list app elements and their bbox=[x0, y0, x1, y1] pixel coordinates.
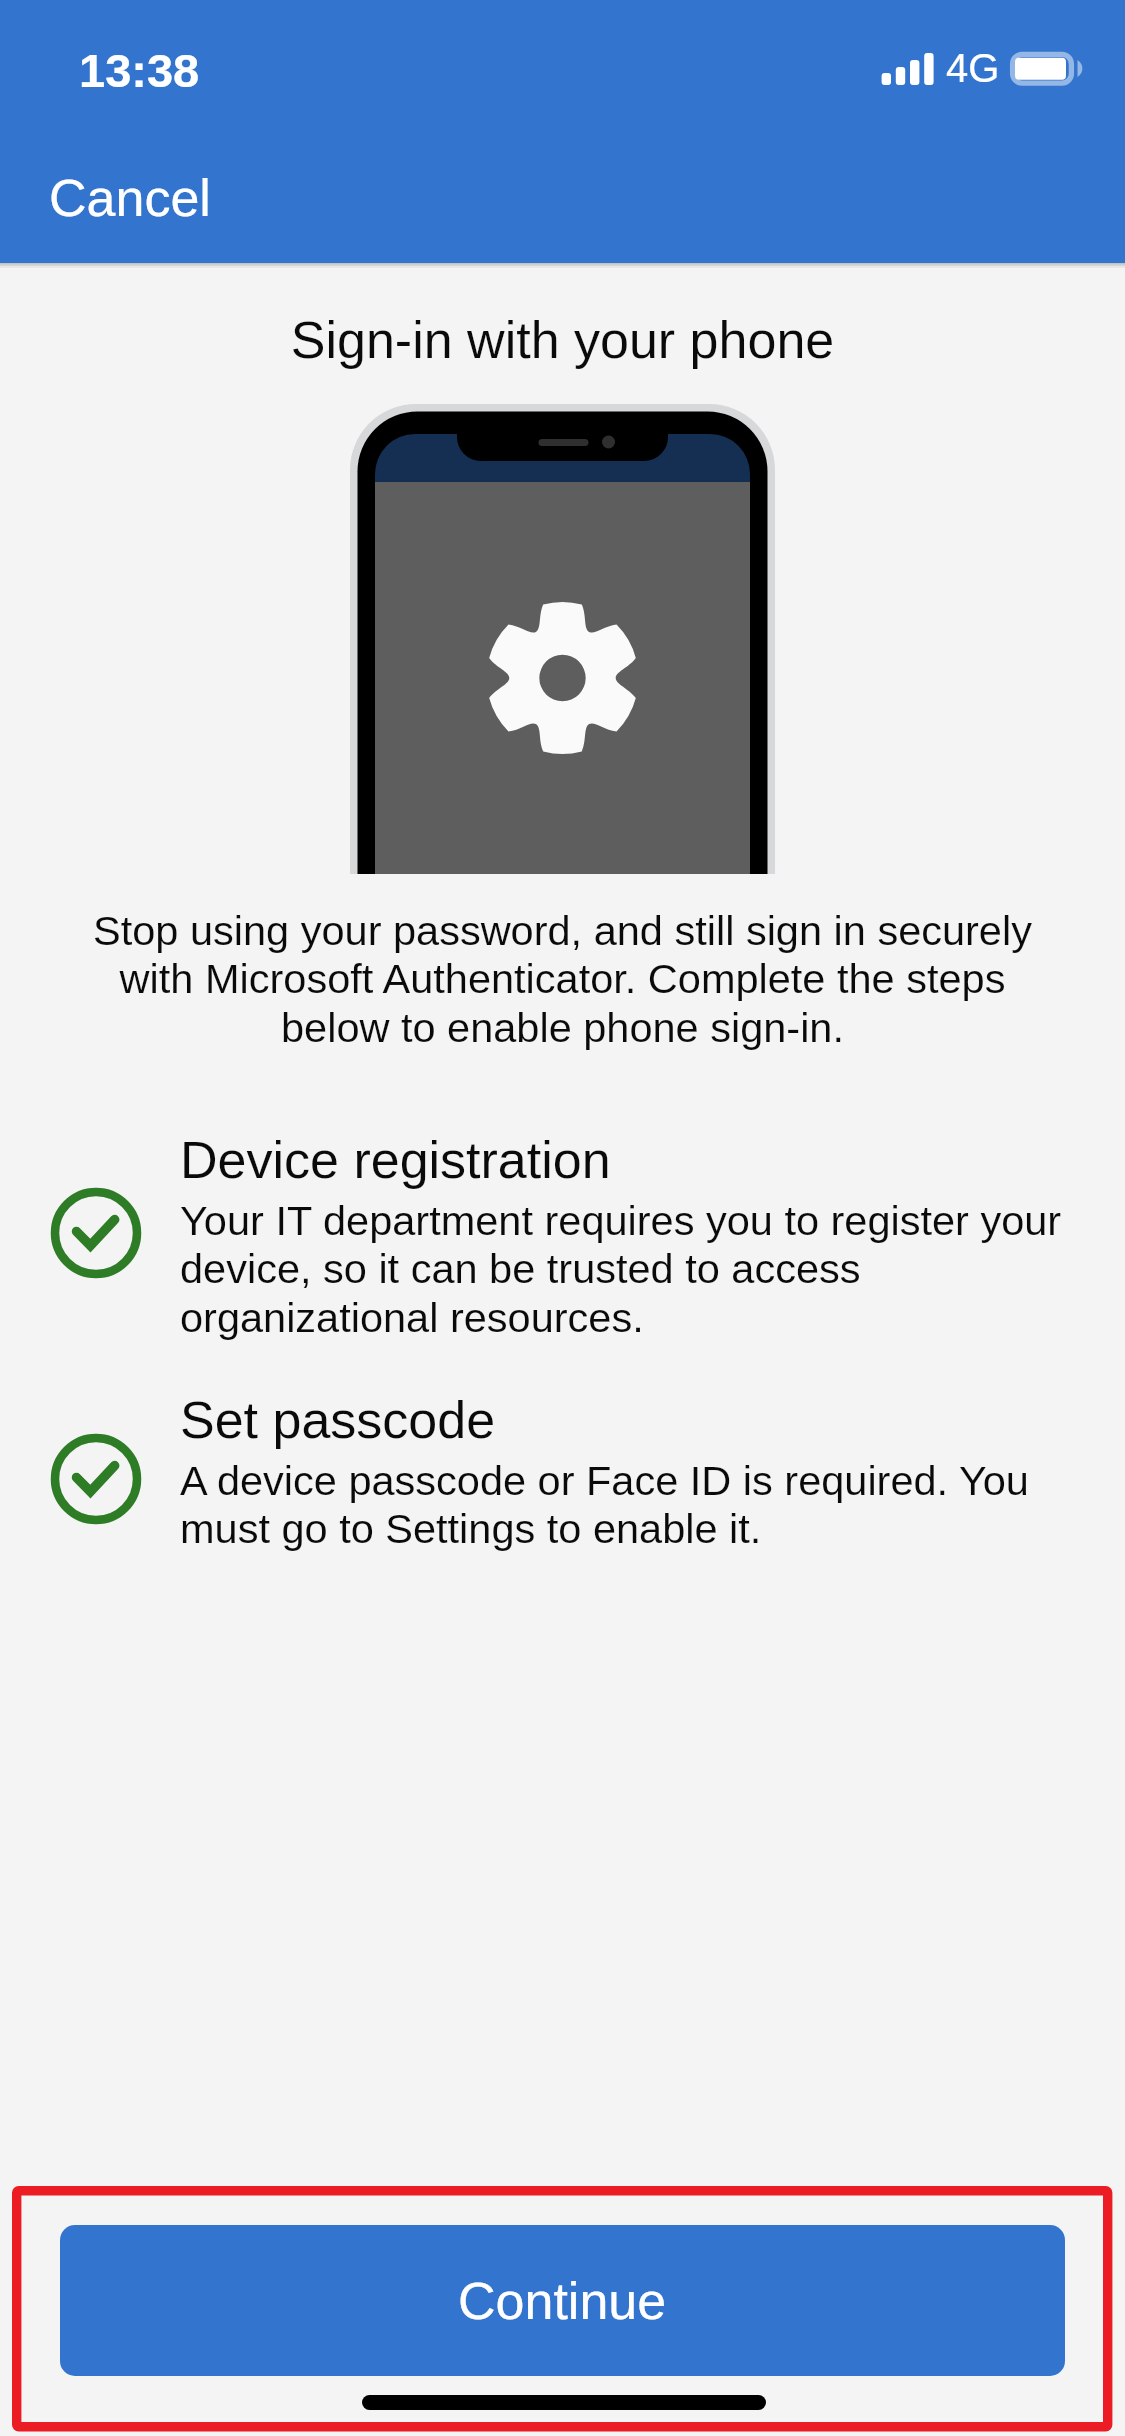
staticText: 13:38 bbox=[79, 44, 200, 97]
button[interactable]: Cancel bbox=[23, 145, 237, 251]
other: Completed bbox=[47, 1184, 145, 1282]
staticText: Cancel bbox=[49, 169, 211, 227]
other: Signal 4G, battery full bbox=[876, 41, 1091, 97]
staticText: 4G bbox=[946, 46, 1000, 91]
staticText: A device passcode or Face ID is required… bbox=[180, 1457, 1062, 1552]
staticText: Sign-in with your phone bbox=[0, 311, 1125, 369]
other: Phone showing the Settings gear icon bbox=[350, 404, 775, 874]
other: Completed bbox=[47, 1430, 145, 1528]
staticText: Device registration bbox=[180, 1131, 611, 1189]
staticText: Your IT department requires you to regis… bbox=[180, 1197, 1062, 1341]
staticText: Continue bbox=[458, 2272, 667, 2330]
staticText: Set passcode bbox=[180, 1391, 496, 1449]
staticText: Stop using your password, and still sign… bbox=[72, 907, 1053, 1051]
button[interactable]: Continue bbox=[60, 2225, 1065, 2376]
